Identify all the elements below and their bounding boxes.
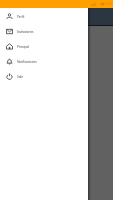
staticText: Notificaciones — [17, 59, 37, 64]
staticText: Mi aplicación — [16, 15, 41, 20]
button[interactable]: Abrir menú — [5, 14, 11, 20]
staticText: Invitaciones — [17, 29, 34, 34]
button[interactable]: Notificaciones — [0, 54, 88, 69]
staticText: Perfil — [17, 14, 25, 19]
staticText: Salir — [17, 74, 23, 79]
staticText: Principal — [17, 44, 29, 49]
button[interactable]: Principal — [0, 39, 88, 54]
button[interactable]: Perfil — [0, 9, 88, 24]
button[interactable]: Salir — [0, 69, 88, 84]
button[interactable]: Invitaciones — [0, 24, 88, 39]
staticText: 4:32 — [106, 2, 112, 6]
